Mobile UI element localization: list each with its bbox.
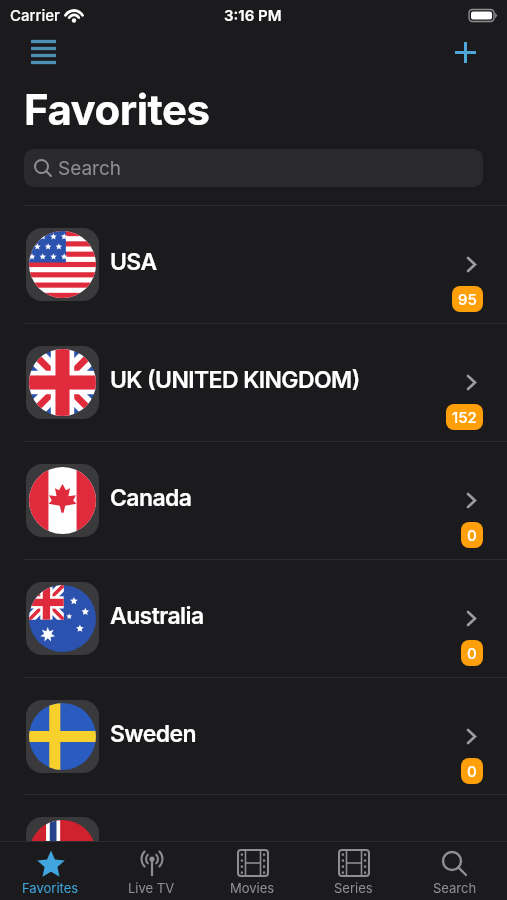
staticText: Favorites (22, 880, 79, 896)
staticText: 95 (458, 290, 477, 308)
button[interactable]: USA (0, 205, 507, 323)
button[interactable]: Live TV (101, 848, 202, 896)
staticText: Live TV (128, 880, 175, 896)
button[interactable]: Search (404, 848, 505, 896)
staticText: 0 (467, 526, 477, 544)
staticText: 0 (467, 644, 477, 662)
button[interactable]: Favorites (0, 848, 101, 896)
staticText: Norway (110, 837, 193, 865)
staticText: 0 (467, 762, 477, 780)
staticText: Australia (110, 602, 204, 630)
button[interactable]: Series (303, 848, 404, 896)
staticText: UK (UNITED KINGDOM) (110, 366, 360, 394)
staticText: Canada (110, 484, 192, 512)
staticText: Search (433, 880, 477, 896)
staticText: Sweden (110, 720, 196, 748)
button[interactable] (31, 40, 56, 64)
button[interactable]: Australia (0, 559, 507, 677)
button[interactable]: Movies (202, 848, 303, 896)
staticText: 3:16 PM (224, 6, 282, 24)
staticText: Search (58, 157, 122, 180)
button[interactable]: UK (UNITED KINGDOM) (0, 323, 507, 441)
staticText: USA (110, 248, 157, 276)
button[interactable] (455, 42, 476, 63)
button[interactable]: Search (24, 149, 483, 187)
staticText: 152 (452, 408, 477, 426)
staticText: Series (334, 880, 373, 896)
button[interactable]: Sweden (0, 677, 507, 795)
staticText: 4 (467, 879, 477, 897)
button[interactable]: Canada (0, 441, 507, 559)
staticText: Favorites (24, 84, 210, 135)
staticText: Movies (230, 880, 275, 896)
button[interactable]: Norway (0, 794, 507, 900)
staticText: Carrier (10, 6, 60, 24)
